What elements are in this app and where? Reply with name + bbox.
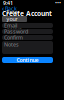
staticText: Password <box>4 28 28 35</box>
staticText: ‹ <box>2 4 4 13</box>
staticText: Enter your details <box>6 8 22 30</box>
staticText: Notes <box>4 41 19 48</box>
staticText: Continue <box>16 56 38 64</box>
staticText: 9:41 <box>3 0 13 7</box>
staticText: Email <box>4 22 17 29</box>
button[interactable]: ‹ <box>0 6 64 11</box>
staticText: ••• <box>55 0 61 7</box>
button[interactable]: Continue <box>2 57 53 63</box>
staticText: Confirm <box>4 34 23 41</box>
staticText: Back <box>5 5 17 12</box>
staticText: Create Account <box>2 9 52 18</box>
